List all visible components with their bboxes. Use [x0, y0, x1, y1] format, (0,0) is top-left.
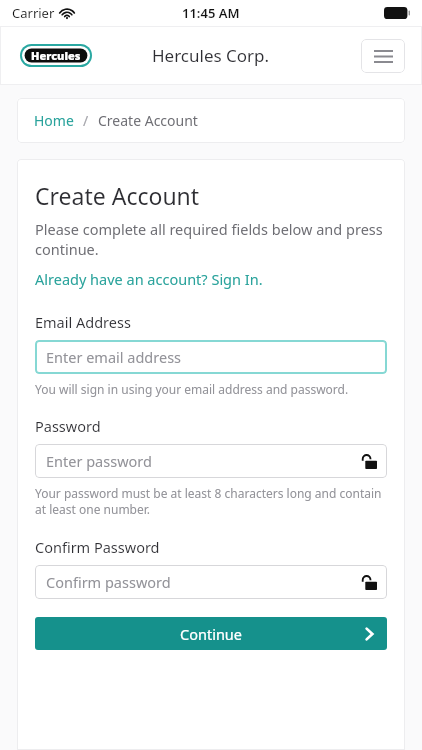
button[interactable]: Already have an account? Sign In.	[35, 269, 263, 289]
staticText: Enter password	[46, 451, 152, 471]
staticText: Continue	[180, 624, 242, 644]
staticText: Hercules	[31, 48, 81, 63]
button[interactable]: Home	[34, 111, 74, 130]
staticText: You will sign in using your email addres…	[35, 381, 349, 397]
staticText: Confirm password	[46, 572, 171, 592]
staticText: 11:45 AM	[182, 4, 240, 22]
staticText: Hercules Corp.	[152, 44, 270, 67]
staticText: Email Address	[35, 312, 131, 332]
staticText: Please complete all required fields belo…	[35, 219, 387, 259]
staticText: Create Account	[35, 180, 200, 211]
staticText: Create Account	[98, 111, 198, 130]
staticText: Password	[35, 416, 101, 436]
button[interactable]: Hercules home	[20, 44, 92, 67]
button[interactable]: Enter password	[35, 444, 387, 478]
button[interactable]: Enter email address	[35, 340, 387, 374]
staticText: Your password must be at least 8 charact…	[35, 485, 387, 518]
staticText: /	[83, 111, 89, 130]
button[interactable]: Confirm password	[35, 565, 387, 599]
button[interactable]: Continue	[35, 617, 387, 650]
staticText: Confirm Password	[35, 537, 160, 557]
staticText: Carrier	[12, 4, 55, 22]
staticText: Enter email address	[46, 347, 182, 367]
button[interactable]: Menu	[361, 39, 405, 73]
